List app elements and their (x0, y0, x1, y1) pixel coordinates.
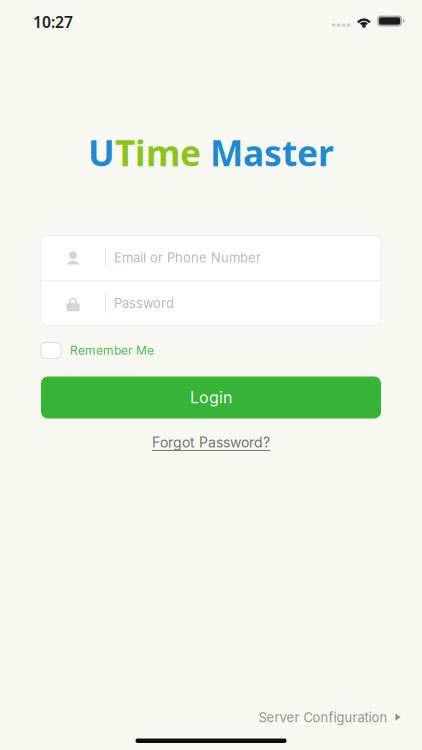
button[interactable]: Server Configuration (258, 705, 401, 729)
staticText: Forgot Password? (152, 434, 270, 451)
staticText: Login (190, 388, 232, 407)
button[interactable]: Remember Me (41, 341, 381, 359)
staticText: Remember Me (70, 343, 154, 358)
button[interactable]: Login (41, 376, 381, 418)
staticText: Master (210, 128, 334, 176)
staticText: U (88, 128, 115, 176)
button[interactable]: Forgot Password? (152, 432, 270, 452)
staticText: Time (115, 128, 201, 176)
staticText: Email or Phone Number (114, 250, 261, 265)
staticText: 10:27 (33, 11, 73, 32)
staticText: Server Configuration (258, 710, 387, 725)
staticText: Password (114, 295, 174, 311)
